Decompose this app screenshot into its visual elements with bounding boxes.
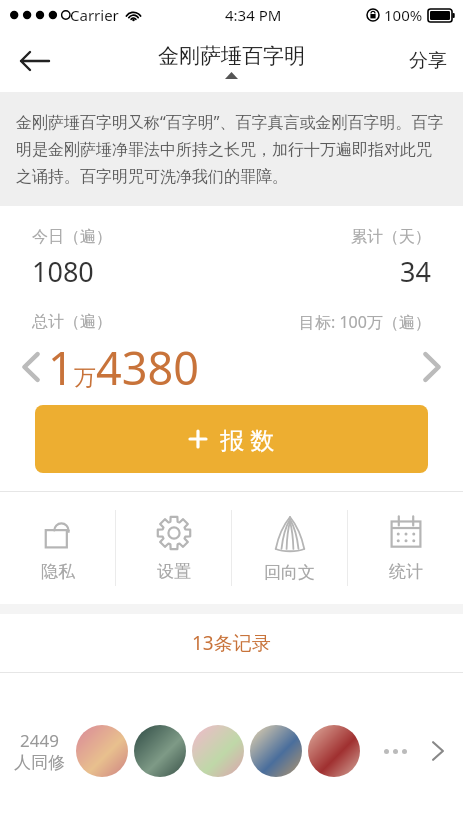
button[interactable]: 13条记录 bbox=[0, 614, 463, 672]
staticText: 4:34 PM bbox=[225, 5, 282, 25]
staticText: 总计（遍） bbox=[32, 312, 112, 332]
button[interactable]: 回向文 bbox=[232, 492, 347, 604]
staticText: 隐私 bbox=[41, 561, 75, 582]
button[interactable]: 报 数 bbox=[35, 405, 428, 473]
button[interactable]: 隐私 bbox=[0, 492, 115, 604]
button[interactable]: Member avatar bbox=[308, 725, 360, 777]
button[interactable]: Member avatar bbox=[192, 725, 244, 777]
staticText: 13条记录 bbox=[192, 630, 271, 656]
staticText: 1 bbox=[48, 337, 74, 397]
button[interactable]: More members bbox=[421, 734, 455, 768]
button[interactable]: 统计 bbox=[348, 492, 463, 604]
staticText: 2449 bbox=[20, 729, 59, 752]
staticText: 34 bbox=[400, 253, 431, 290]
staticText: 金刚萨埵百字明 bbox=[158, 43, 305, 69]
staticText: 设置 bbox=[157, 561, 191, 582]
staticText: Carrier bbox=[70, 5, 119, 25]
button[interactable]: Previous bbox=[14, 350, 48, 384]
staticText: 4380 bbox=[96, 337, 199, 397]
staticText: 报 数 bbox=[220, 423, 275, 456]
staticText: 目标: 100万（遍） bbox=[299, 311, 431, 333]
staticText: 今日（遍） bbox=[32, 227, 112, 247]
staticText: 万 bbox=[74, 364, 96, 392]
staticText: 回向文 bbox=[264, 562, 315, 583]
button[interactable]: 设置 bbox=[116, 492, 231, 604]
button[interactable]: Back bbox=[8, 35, 60, 87]
button[interactable]: 分享 bbox=[399, 41, 457, 81]
staticText: 人同修 bbox=[14, 752, 65, 773]
button[interactable]: Member avatar bbox=[76, 725, 128, 777]
staticText: 统计 bbox=[389, 561, 423, 582]
button[interactable]: Member avatar bbox=[250, 725, 302, 777]
staticText: 1080 bbox=[32, 253, 94, 290]
staticText: 分享 bbox=[409, 49, 447, 73]
button[interactable]: Next bbox=[415, 350, 449, 384]
staticText: 累计（天） bbox=[351, 227, 431, 247]
staticText: 金刚萨埵百字明又称“百字明”、百字真言或金刚百字明。百字明是金刚萨埵净罪法中所持… bbox=[16, 111, 447, 187]
staticText: 100% bbox=[384, 5, 423, 25]
button[interactable]: Member avatar bbox=[134, 725, 186, 777]
